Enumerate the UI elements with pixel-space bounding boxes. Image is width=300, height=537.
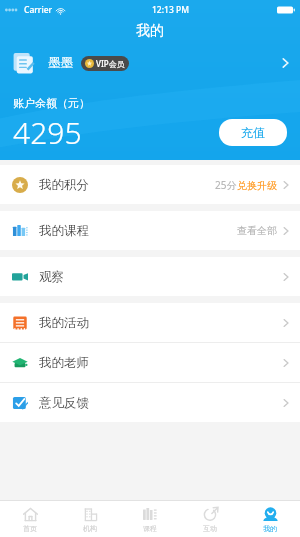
- button[interactable]: 互动: [180, 501, 240, 537]
- staticText: 4295: [13, 112, 82, 153]
- staticText: 我的: [136, 22, 164, 40]
- button[interactable]: 机构: [60, 501, 120, 537]
- staticText: 充值: [241, 125, 265, 140]
- staticText: 我的活动: [39, 315, 89, 331]
- button[interactable]: 墨墨: [0, 42, 300, 84]
- button[interactable]: 首页: [0, 501, 60, 537]
- staticText: 意见反馈: [39, 395, 89, 411]
- staticText: 观察: [39, 269, 64, 285]
- staticText: 我的老师: [39, 355, 89, 371]
- staticText: 墨墨: [48, 55, 73, 71]
- button[interactable]: 课程: [120, 501, 180, 537]
- staticText: 查看全部: [237, 224, 277, 237]
- button[interactable]: 我的老师: [0, 343, 300, 382]
- staticText: Carrier: [24, 4, 53, 16]
- staticText: 我的积分: [39, 177, 89, 193]
- button[interactable]: 我的活动: [0, 303, 300, 342]
- staticText: 互动: [203, 524, 217, 533]
- button[interactable]: 我的课程: [0, 211, 300, 250]
- staticText: 我的: [263, 524, 277, 533]
- staticText: 25分: [215, 178, 237, 192]
- staticText: 12:13 PM: [152, 4, 189, 16]
- staticText: 我的课程: [39, 223, 89, 239]
- staticText: VIP会员: [96, 58, 125, 69]
- staticText: 首页: [23, 524, 37, 533]
- button[interactable]: 我的积分: [0, 165, 300, 204]
- button[interactable]: 意见反馈: [0, 383, 300, 422]
- staticText: 机构: [83, 524, 97, 533]
- staticText: 课程: [143, 524, 157, 533]
- button[interactable]: 观察: [0, 257, 300, 296]
- button[interactable]: 充值: [219, 119, 287, 146]
- button[interactable]: 我的: [240, 501, 300, 537]
- staticText: 账户余额（元）: [13, 96, 90, 110]
- staticText: 兑换升级: [237, 179, 277, 192]
